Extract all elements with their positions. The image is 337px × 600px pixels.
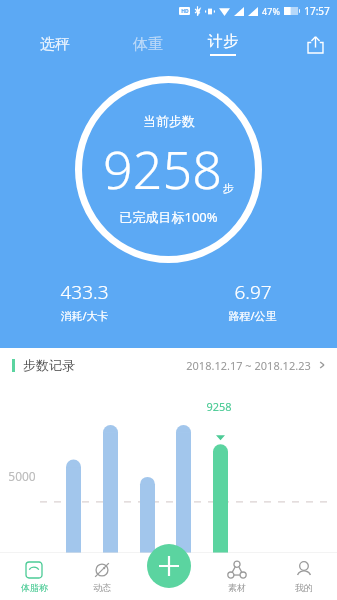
staticText: 17:57	[304, 4, 330, 18]
staticText: 步	[223, 181, 234, 195]
staticText: 消耗/大卡	[60, 308, 109, 323]
button[interactable]: 步数记录	[0, 348, 337, 382]
button[interactable]: 素材	[203, 553, 270, 600]
staticText: 已完成目标100%	[119, 208, 218, 226]
staticText: 选秤	[40, 35, 70, 54]
button[interactable]: 体重	[110, 22, 185, 66]
button[interactable]: 动态	[68, 553, 136, 600]
button[interactable]: Share	[293, 22, 337, 66]
staticText: 计步	[208, 32, 238, 51]
staticText: 47%	[262, 5, 280, 17]
staticText: 9258	[103, 133, 222, 204]
staticText: 体重	[133, 35, 163, 54]
staticText: 动态	[93, 582, 111, 593]
staticText: 我的	[295, 582, 313, 593]
staticText: 步数记录	[23, 357, 75, 373]
button[interactable]: Add	[147, 544, 191, 588]
staticText: 2018.12.17 ~ 2018.12.23	[186, 358, 311, 373]
button[interactable]: 体脂称	[0, 553, 68, 600]
staticText: 路程/公里	[228, 308, 277, 323]
staticText: 体脂称	[21, 582, 48, 593]
staticText: HD	[181, 8, 189, 15]
staticText: 素材	[228, 582, 246, 593]
button[interactable]: 计步	[185, 22, 260, 66]
button[interactable]: 选秤	[0, 22, 110, 66]
staticText: 5000	[8, 468, 36, 484]
staticText: 当前步数	[143, 113, 195, 129]
staticText: 433.3	[60, 279, 109, 305]
button[interactable]: 我的	[270, 553, 337, 600]
staticText: 9258	[206, 399, 232, 414]
staticText: 6.97	[234, 279, 272, 305]
